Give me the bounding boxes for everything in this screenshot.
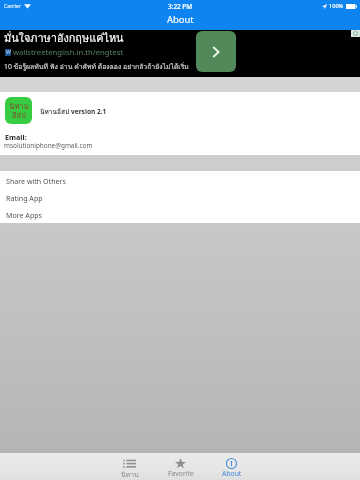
staticText: Favorite bbox=[168, 469, 194, 478]
button[interactable]: Stories bbox=[104, 453, 155, 480]
button[interactable]: More Apps bbox=[0, 205, 360, 222]
button[interactable]: มั่นใจภาษาอังกฤษแค่ไหน bbox=[0, 30, 360, 77]
staticText: 3:22 PM bbox=[168, 2, 193, 11]
staticText: นิทาน อีสป bbox=[9, 100, 29, 122]
staticText: Email: bbox=[5, 132, 27, 142]
button[interactable]: Open offer bbox=[196, 31, 236, 72]
button[interactable]: About bbox=[206, 453, 257, 480]
staticText: 10 ข้อรู้ผลทันที ฟัง อ่าน คำศัพท์ ต้องลอ… bbox=[4, 61, 189, 72]
staticText: Carrier bbox=[4, 2, 21, 9]
staticText: มั่นใจภาษาอังกฤษแค่ไหน bbox=[4, 29, 124, 46]
staticText: wallstreetenglish.in.th/engtest bbox=[13, 47, 124, 57]
staticText: นิทาน bbox=[121, 469, 139, 480]
staticText: 100% bbox=[329, 2, 344, 10]
button[interactable]: Rating App bbox=[0, 188, 360, 205]
staticText: More Apps bbox=[6, 210, 43, 220]
button[interactable]: Share with Others bbox=[0, 171, 360, 188]
staticText: W bbox=[6, 49, 11, 56]
staticText: About bbox=[222, 469, 242, 478]
staticText: Share with Others bbox=[6, 176, 66, 186]
staticText: About bbox=[167, 13, 194, 26]
button[interactable]: Favorite bbox=[155, 453, 206, 480]
staticText: msolutioniphone@gmail.com bbox=[4, 141, 93, 150]
button[interactable]: AdChoices bbox=[351, 30, 360, 37]
staticText: Rating App bbox=[6, 193, 43, 203]
staticText: นิทานอีสป version 2.1 bbox=[40, 106, 107, 116]
